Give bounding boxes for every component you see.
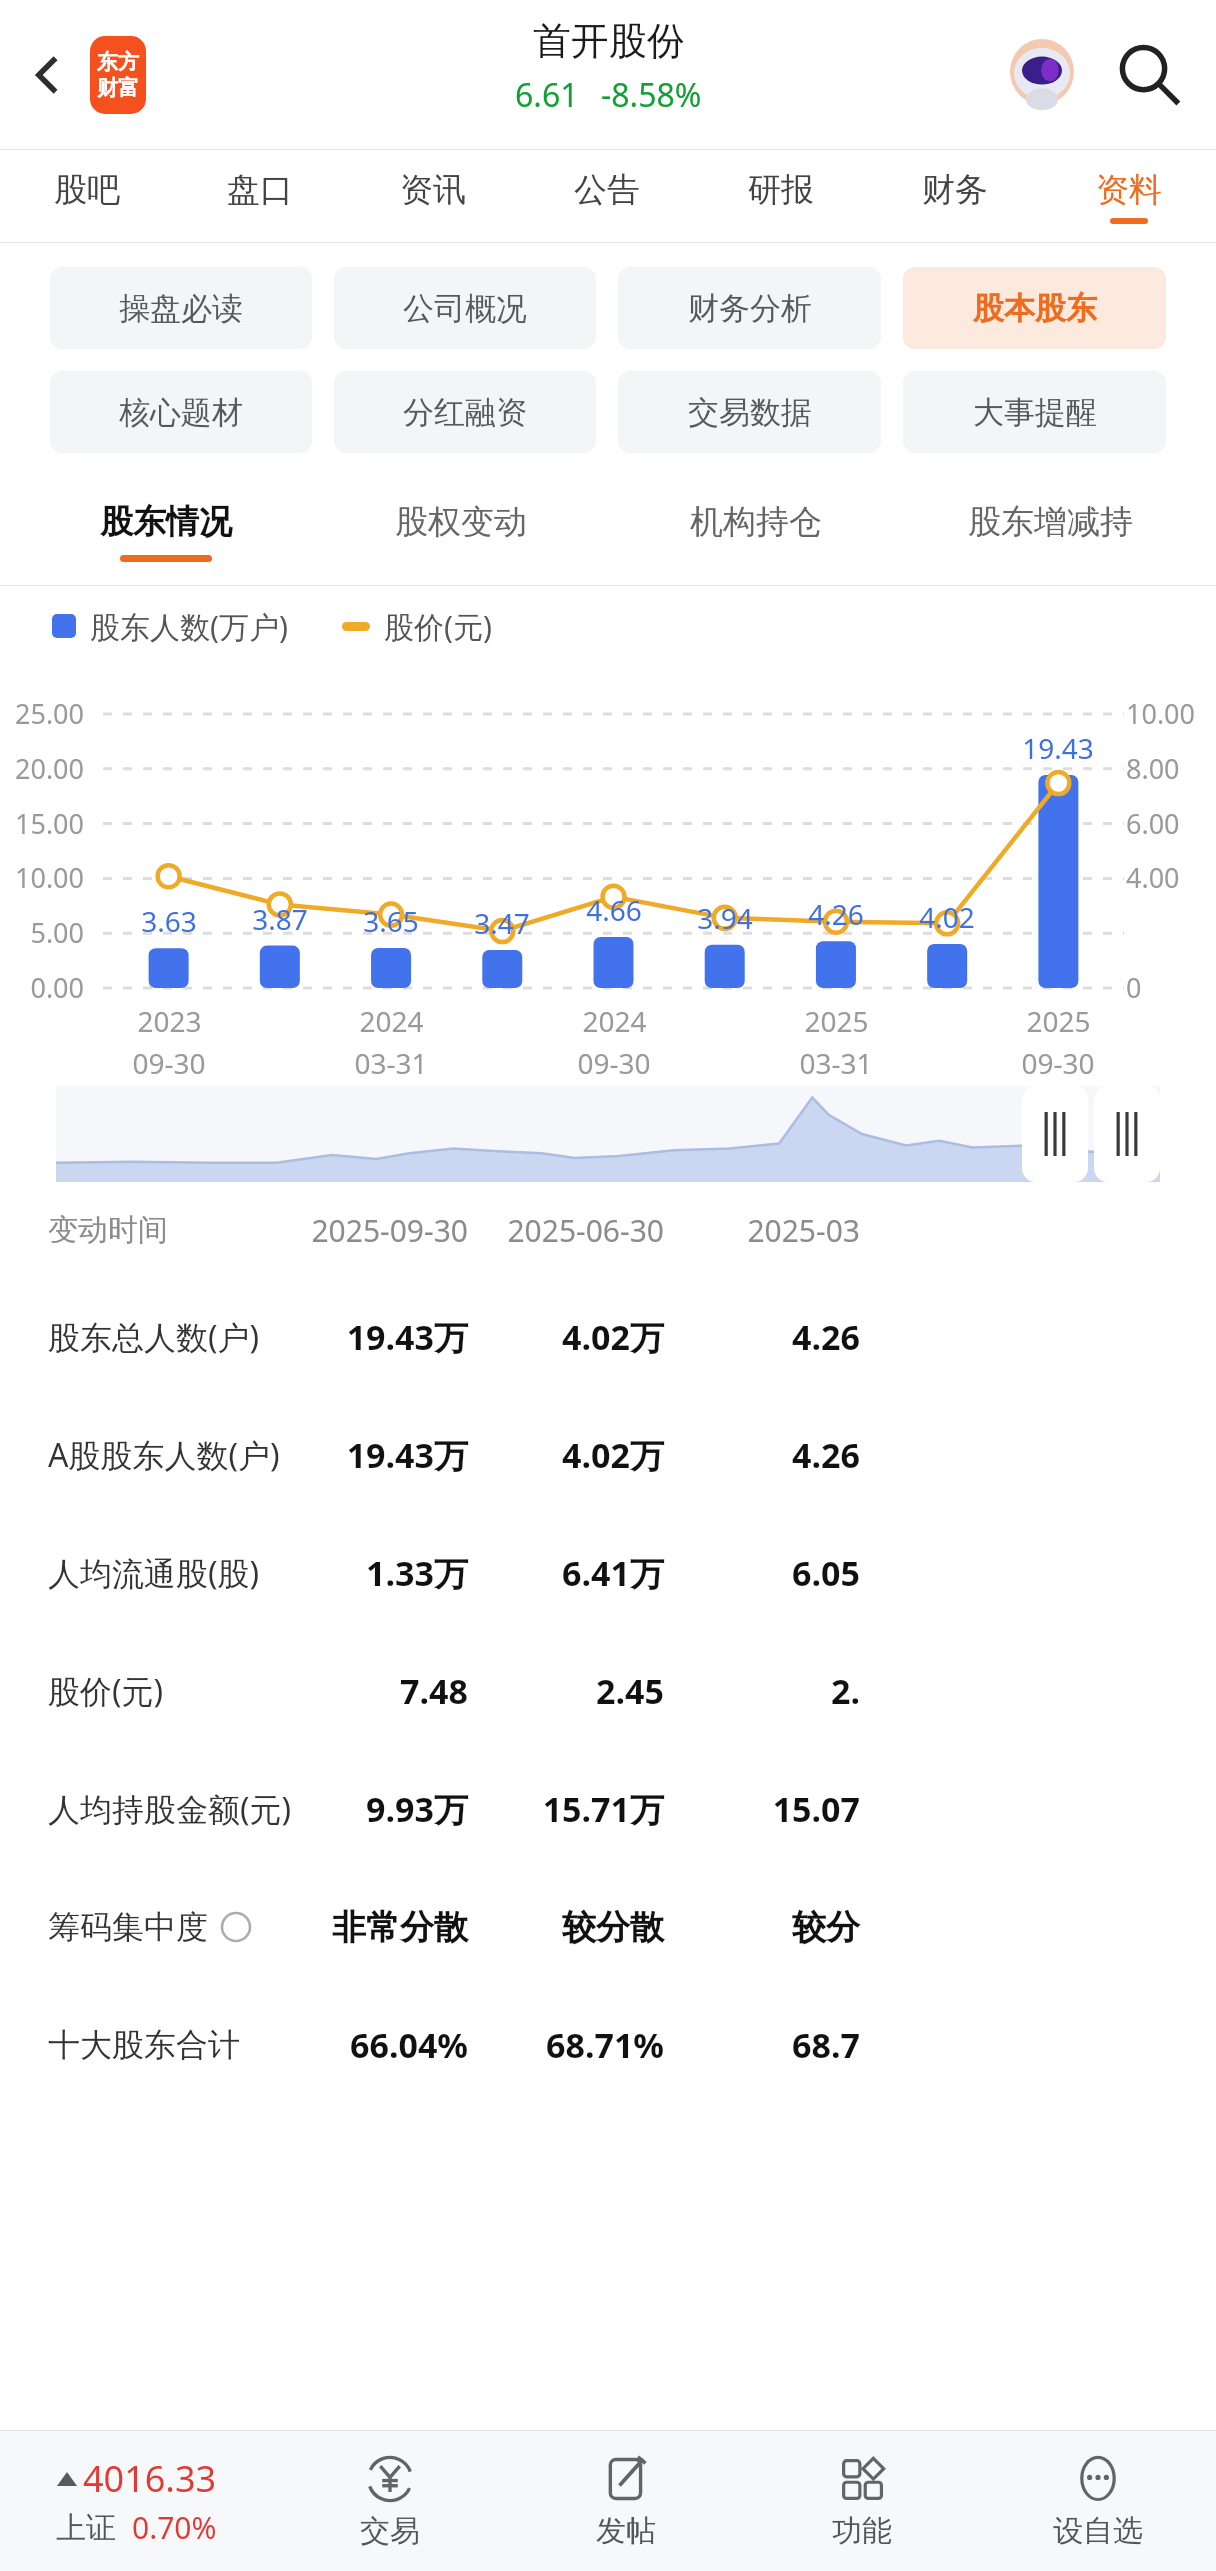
button[interactable]: 资讯 (346, 150, 520, 242)
button[interactable]: 盘口 (173, 150, 346, 242)
button[interactable]: 人均持股金额(元) (0, 1750, 1216, 1868)
staticText: 1.33万 (366, 1550, 468, 1596)
staticText: 4016.33 (83, 2454, 217, 2503)
button[interactable]: 股价(元) (0, 1632, 1216, 1750)
button[interactable]: 人均流通股(股) (0, 1514, 1216, 1632)
button[interactable]: 东方财富 (90, 36, 146, 114)
staticText: 股价(元) (384, 606, 492, 647)
staticText: 设自选 (1053, 2512, 1143, 2550)
staticText: 2025-03 (747, 1210, 860, 1251)
button[interactable]: 分红融资 (334, 371, 596, 453)
button[interactable]: 机构持仓 (608, 477, 903, 585)
staticText: 7.48 (400, 1668, 468, 1714)
staticText: 股东人数(万户) (90, 606, 288, 647)
staticText: 3.47 (474, 904, 530, 942)
staticText: 财务分析 (688, 289, 812, 328)
button[interactable]: 股权变动 (313, 477, 608, 585)
button[interactable]: 十大股东合计 (0, 1986, 1216, 2104)
button[interactable]: 股吧 (0, 150, 173, 242)
button[interactable]: Back (8, 35, 88, 115)
staticText: 2025 (804, 1002, 869, 1040)
staticText: 68.7 (792, 2022, 860, 2068)
staticText: 股东总人数(户) (48, 1315, 260, 1359)
button[interactable]: 公告 (520, 150, 694, 242)
staticText: 0 (1126, 969, 1142, 1006)
staticText: 6.05 (792, 1550, 860, 1596)
button[interactable]: 股东情况 (18, 477, 313, 585)
staticText: 19.43万 (346, 1432, 468, 1478)
staticText: 5.00 (30, 914, 84, 951)
staticText: 3.65 (363, 902, 419, 940)
staticText: 19.43 (1022, 729, 1094, 767)
button[interactable]: 上证指数 (0, 2431, 272, 2571)
staticText: 2023 (137, 1002, 202, 1040)
staticText: 4.26 (792, 1314, 860, 1360)
staticText: 十大股东合计 (48, 2025, 240, 2065)
staticText: 股吧 (54, 169, 120, 211)
button[interactable]: 拖动手柄 (1022, 1086, 1088, 1182)
staticText: 东方 (97, 49, 139, 75)
staticText: 2025-09-30 (311, 1210, 468, 1251)
button[interactable]: 股东增减持 (903, 477, 1198, 585)
staticText: 较分 (792, 1906, 860, 1949)
staticText: A股股东人数(户) (48, 1433, 280, 1477)
button[interactable]: AI助手 (998, 31, 1086, 119)
button[interactable]: 股东总人数(户) (0, 1278, 1216, 1396)
staticText: 6.41万 (562, 1550, 664, 1596)
staticText: 09-30 (132, 1044, 206, 1082)
staticText: 4.02万 (562, 1314, 664, 1360)
button[interactable]: 核心题材 (50, 371, 312, 453)
staticText: 9.93万 (366, 1786, 468, 1832)
button[interactable]: 资料 (1042, 150, 1216, 242)
staticText: 机构持仓 (690, 501, 822, 543)
button[interactable]: 大事提醒 (903, 371, 1166, 453)
staticText: 股东情况 (100, 501, 232, 543)
staticText: 人均持股金额(元) (48, 1787, 292, 1831)
staticText: 首开股份 (533, 17, 685, 65)
button[interactable]: 筹码集中度 (0, 1868, 1216, 1986)
staticText: 10.00 (1126, 695, 1196, 732)
staticText: 25.00 (14, 695, 84, 732)
staticText: 4.66 (586, 891, 642, 929)
staticText: 盘口 (227, 169, 293, 211)
staticText: 交易 (360, 2512, 420, 2550)
staticText: 0.00 (30, 969, 84, 1006)
button[interactable]: 功能 (744, 2431, 980, 2571)
button[interactable]: 财务 (868, 150, 1042, 242)
staticText: 股本股东 (973, 289, 1097, 328)
staticText: 资料 (1096, 169, 1162, 211)
staticText: 操盘必读 (119, 289, 243, 328)
button[interactable]: 设自选 (980, 2431, 1216, 2571)
button[interactable]: 公司概况 (334, 267, 596, 349)
staticText: 15.07 (772, 1786, 860, 1832)
staticText: 2025 (1026, 1002, 1091, 1040)
staticText: 6.61 (515, 73, 579, 117)
button[interactable]: 操盘必读 (50, 267, 312, 349)
button[interactable]: 研报 (694, 150, 868, 242)
staticText: 公告 (574, 169, 640, 211)
staticText: 研报 (748, 169, 814, 211)
button[interactable]: A股股东人数(户) (0, 1396, 1216, 1514)
button[interactable]: 交易数据 (618, 371, 881, 453)
staticText: 非常分散 (332, 1906, 468, 1949)
button[interactable]: 发帖 (508, 2431, 744, 2571)
button[interactable]: 股本股东 (903, 267, 1166, 349)
staticText: 财务 (922, 169, 988, 211)
staticText: 4.26 (792, 1432, 860, 1478)
button[interactable]: 拖动手柄 (1094, 1086, 1160, 1182)
button[interactable]: 财务分析 (618, 267, 881, 349)
staticText: 财富 (97, 75, 139, 101)
button[interactable]: 时间范围选择 (56, 1086, 1160, 1182)
staticText: 筹码集中度 (48, 1907, 208, 1947)
staticText: 功能 (832, 2512, 892, 2550)
staticText: 3.94 (697, 899, 753, 937)
staticText: 交易数据 (688, 393, 812, 432)
staticText: 分红融资 (403, 393, 527, 432)
staticText: 资讯 (400, 169, 466, 211)
staticText: 09-30 (577, 1044, 651, 1082)
staticText: 6.00 (1126, 805, 1180, 842)
button[interactable]: Search (1104, 31, 1192, 119)
button[interactable]: 交易 (272, 2431, 508, 2571)
staticText: 66.04% (349, 2022, 468, 2068)
staticText: 股价(元) (48, 1669, 164, 1713)
